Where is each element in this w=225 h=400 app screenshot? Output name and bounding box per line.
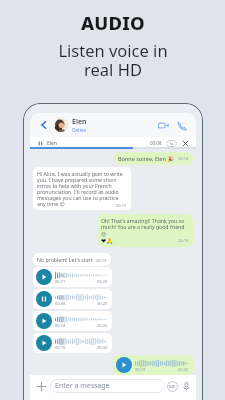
- button[interactable]: Play: [116, 355, 189, 375]
- staticText: Oh! That's amazing!! Thank you so much! …: [101, 217, 189, 237]
- button[interactable]: Play: [36, 267, 108, 287]
- button[interactable]: Close player: [181, 139, 189, 147]
- button[interactable]: Back: [38, 119, 50, 131]
- staticText: Hi Alice, I was actually goin to write y…: [37, 170, 127, 208]
- button[interactable]: Play: [36, 335, 52, 351]
- staticText: 20:14: [178, 156, 189, 161]
- staticText: 20:19: [96, 258, 107, 263]
- button[interactable]: Play: [36, 311, 108, 331]
- staticText: 00:25: [97, 323, 108, 328]
- button[interactable]: Pause: [36, 289, 108, 309]
- staticText: 00:19: [55, 345, 66, 350]
- button[interactable]: Playback speed: [166, 140, 177, 147]
- button[interactable]: Video call: [157, 119, 170, 132]
- staticText: 1x: [169, 141, 174, 146]
- button[interactable]: Bonne soirée, Elen 🎉: [118, 155, 189, 162]
- staticText: 00:29: [97, 279, 108, 284]
- button[interactable]: Play: [36, 333, 108, 353]
- button[interactable]: Pause: [36, 291, 52, 307]
- staticText: 20:19: [178, 238, 189, 243]
- staticText: Listen voice in real HD: [58, 39, 168, 81]
- button[interactable]: Hi Alice, I was actually goin to write y…: [37, 170, 127, 208]
- staticText: Elen: [47, 140, 57, 147]
- staticText: 20:17: [116, 203, 127, 208]
- button[interactable]: Enter a message: [55, 379, 161, 393]
- staticText: GIF: [169, 384, 176, 389]
- button[interactable]: Play: [36, 313, 52, 329]
- button[interactable]: Play: [36, 269, 52, 285]
- staticText: Online: [72, 127, 86, 133]
- staticText: AUDIO: [81, 10, 145, 35]
- staticText: 00:32: [178, 367, 189, 372]
- staticText: ❤️🙏: [101, 237, 114, 244]
- staticText: Elen: [72, 117, 87, 127]
- button[interactable]: Play: [116, 357, 132, 373]
- staticText: Enter a message: [55, 381, 110, 391]
- staticText: 00:08: [150, 140, 162, 146]
- button[interactable]: Attach: [34, 379, 48, 393]
- staticText: Bonne soirée, Elen 🎉: [118, 155, 175, 162]
- staticText: 00:11: [55, 279, 66, 284]
- staticText: 00:32: [97, 345, 108, 350]
- button[interactable]: Oh! That's amazing!! Thank you so much! …: [101, 217, 189, 244]
- button[interactable]: No problem! Let's start: [37, 256, 107, 263]
- button[interactable]: Voice call: [175, 119, 188, 132]
- staticText: 00:20: [97, 301, 108, 306]
- staticText: 00:19: [135, 367, 146, 372]
- button[interactable]: GIF: [167, 381, 178, 392]
- staticText: 00:08: [55, 301, 66, 306]
- button[interactable]: Record voice: [180, 380, 192, 392]
- staticText: No problem! Let's start: [37, 256, 93, 263]
- staticText: 00:14: [55, 323, 66, 328]
